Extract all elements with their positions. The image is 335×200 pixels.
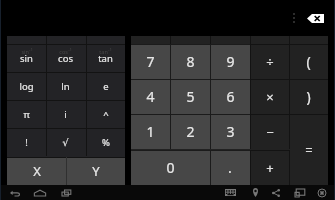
button[interactable]: i xyxy=(46,100,85,128)
staticText: 7 xyxy=(146,52,155,71)
button[interactable]: 1 xyxy=(131,114,170,149)
staticText: Y xyxy=(92,162,100,180)
staticText: cos⁻¹ xyxy=(59,48,72,55)
button[interactable]: cos xyxy=(46,44,85,72)
button[interactable]: 5 xyxy=(170,79,210,114)
staticText: % xyxy=(102,136,110,149)
staticText: 5 xyxy=(186,87,195,106)
button[interactable]: 7 xyxy=(131,44,170,79)
button[interactable]: Delete xyxy=(303,9,327,27)
button[interactable]: Keyboard xyxy=(221,185,239,200)
staticText: cos xyxy=(58,52,73,65)
button[interactable]: ( xyxy=(289,44,328,79)
staticText: 0 xyxy=(166,158,175,177)
button[interactable]: . xyxy=(210,150,250,185)
button[interactable]: = xyxy=(289,114,328,185)
button[interactable]: Back xyxy=(6,185,23,200)
button[interactable]: X xyxy=(7,157,66,185)
button[interactable]: − xyxy=(250,114,289,149)
button[interactable]: 3 xyxy=(210,114,250,149)
button[interactable]: Y xyxy=(66,157,125,185)
staticText: 6 xyxy=(226,87,235,106)
button[interactable]: √ xyxy=(46,128,85,156)
button[interactable]: 6 xyxy=(210,79,250,114)
button[interactable]: ^ xyxy=(86,100,125,128)
button[interactable]: Home xyxy=(31,185,48,200)
staticText: 1 xyxy=(146,122,155,141)
staticText: X xyxy=(33,162,41,180)
staticText: 9 xyxy=(226,52,235,71)
button[interactable]: 2 xyxy=(170,114,210,149)
staticText: − xyxy=(266,123,274,141)
staticText: ln xyxy=(61,80,70,93)
button[interactable]: e xyxy=(86,72,125,100)
button[interactable]: Recents xyxy=(58,185,75,200)
staticText: sin xyxy=(20,52,33,65)
button[interactable]: + xyxy=(250,150,289,185)
button[interactable]: ! xyxy=(7,128,46,156)
button[interactable]: × xyxy=(250,79,289,114)
button[interactable]: ln xyxy=(46,72,85,100)
staticText: tan xyxy=(98,52,113,65)
staticText: e xyxy=(103,80,109,93)
staticText: 8 xyxy=(186,52,195,71)
button[interactable]: π xyxy=(7,100,46,128)
button[interactable]: Location xyxy=(247,185,263,200)
button[interactable]: log xyxy=(7,72,46,100)
button[interactable]: 0 xyxy=(131,150,210,185)
button[interactable]: 8 xyxy=(170,44,210,79)
button[interactable]: 4 xyxy=(131,79,170,114)
staticText: ! xyxy=(25,136,28,149)
staticText: = xyxy=(305,141,313,159)
staticText: i xyxy=(64,108,67,121)
staticText: + xyxy=(266,159,274,177)
staticText: 2 xyxy=(186,122,195,141)
button[interactable]: 9 xyxy=(210,44,250,79)
staticText: √ xyxy=(62,137,69,148)
staticText: ( xyxy=(306,52,311,71)
staticText: × xyxy=(266,88,274,106)
staticText: π xyxy=(23,108,30,121)
staticText: tan⁻¹ xyxy=(99,48,112,55)
button[interactable]: % xyxy=(86,128,125,156)
button[interactable]: Screenshot xyxy=(292,185,308,200)
button[interactable]: ÷ xyxy=(250,44,289,79)
staticText: . xyxy=(228,158,232,177)
button[interactable]: sin xyxy=(7,44,46,72)
button[interactable]: ) xyxy=(289,79,328,114)
staticText: ^ xyxy=(103,108,109,121)
staticText: 3 xyxy=(226,122,235,141)
staticText: ÷ xyxy=(266,53,274,71)
staticText: 4 xyxy=(146,87,155,106)
button[interactable]: Share xyxy=(268,185,284,200)
staticText: log xyxy=(19,80,34,93)
button[interactable]: More options xyxy=(287,8,301,28)
button[interactable]: Close xyxy=(314,185,330,200)
staticText: sin⁻¹ xyxy=(21,48,33,55)
staticText: ) xyxy=(306,87,311,106)
button[interactable]: tan xyxy=(86,44,125,72)
